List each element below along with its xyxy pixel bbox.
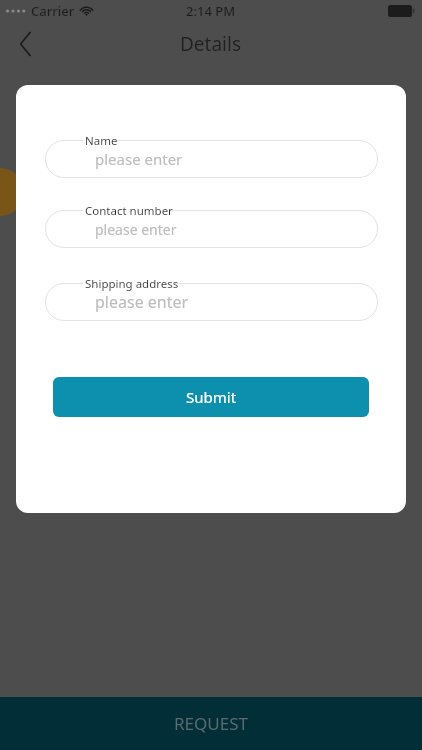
staticText: please enter — [95, 291, 189, 313]
staticText: 2:14 PM — [186, 2, 236, 20]
staticText: REQUEST — [174, 712, 248, 735]
button[interactable]: Submit — [53, 377, 369, 417]
staticText: Name — [85, 133, 118, 149]
staticText: please enter — [95, 149, 183, 169]
button[interactable]: REQUEST — [0, 697, 422, 750]
staticText: Carrier — [31, 2, 75, 20]
button[interactable]: please enter — [45, 283, 378, 321]
staticText: Details — [180, 31, 242, 57]
button[interactable]: please enter — [45, 140, 378, 178]
staticText: Shipping address — [85, 276, 179, 292]
staticText: Contact number — [85, 203, 173, 219]
staticText: please enter — [95, 220, 177, 239]
staticText: Submit — [186, 387, 237, 407]
button[interactable]: Back — [6, 24, 46, 64]
button[interactable]: please enter — [45, 210, 378, 248]
